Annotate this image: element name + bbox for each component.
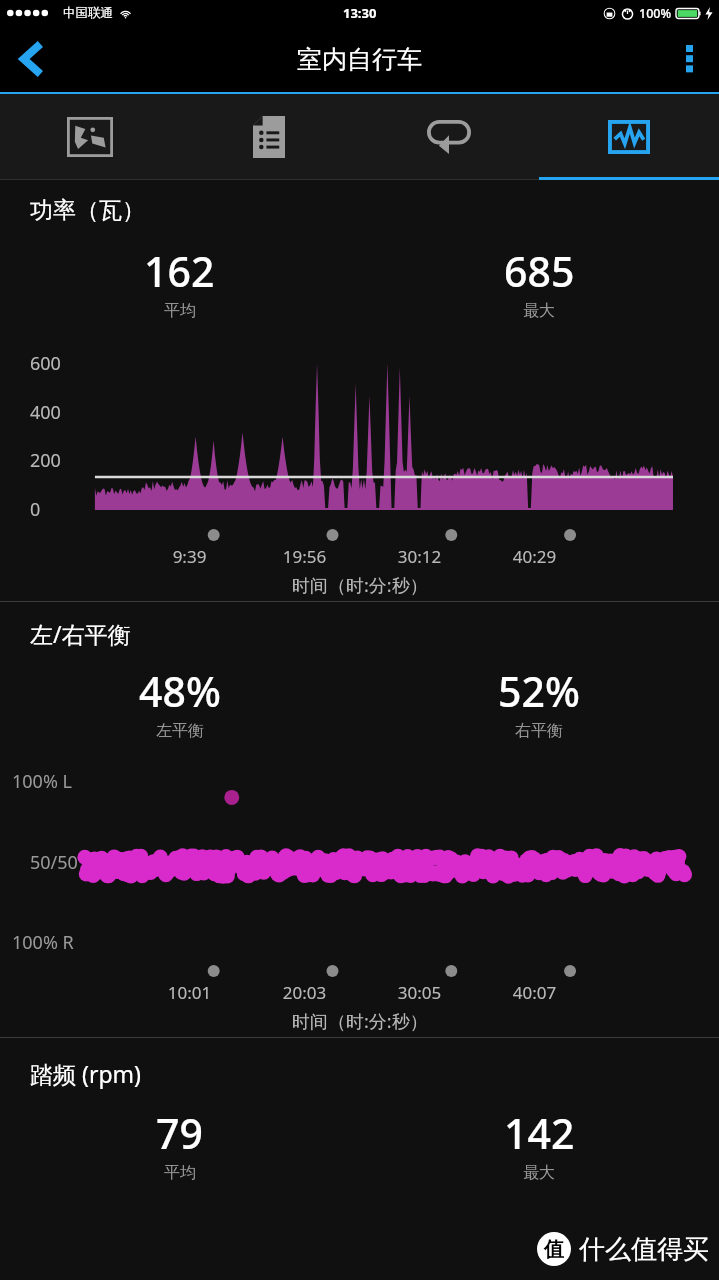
- staticText: 右平衡: [515, 721, 563, 741]
- staticText: 什么值得买: [579, 1233, 709, 1266]
- staticText: 142: [504, 1105, 575, 1161]
- staticText: 20:03: [247, 981, 362, 1004]
- staticText: 400: [30, 400, 61, 424]
- staticText: 0: [30, 497, 41, 521]
- staticText: 值: [544, 1237, 564, 1262]
- staticText: 48%: [139, 663, 221, 719]
- staticText: 平均: [164, 1163, 196, 1183]
- staticText: 40:07: [477, 981, 592, 1004]
- staticText: 40:29: [477, 545, 592, 568]
- staticText: 13:30: [343, 4, 377, 22]
- staticText: 200: [30, 448, 61, 472]
- staticText: 时间（时:分:秒）: [292, 1009, 428, 1033]
- staticText: 100%: [639, 5, 672, 22]
- staticText: 19:56: [247, 545, 362, 568]
- staticText: 9:39: [132, 545, 247, 568]
- staticText: 162: [144, 243, 215, 299]
- button[interactable]: 详情: [179, 94, 359, 180]
- button[interactable]: 返回: [0, 27, 64, 91]
- staticText: 左平衡: [156, 721, 204, 741]
- staticText: 左/右平衡: [30, 618, 131, 649]
- staticText: 最大: [523, 301, 555, 321]
- staticText: 685: [504, 243, 575, 299]
- staticText: 52%: [498, 663, 580, 719]
- button[interactable]: 更多选项: [659, 26, 719, 92]
- staticText: 中国联通: [63, 5, 113, 21]
- button[interactable]: 圈数: [359, 94, 539, 180]
- staticText: 100% L: [12, 769, 72, 794]
- staticText: 600: [30, 351, 61, 375]
- staticText: 50/50: [30, 850, 78, 875]
- staticText: 时间（时:分:秒）: [292, 573, 428, 597]
- staticText: 79: [156, 1105, 203, 1161]
- staticText: 踏频 (rpm): [30, 1058, 141, 1089]
- staticText: 100% R: [12, 930, 74, 955]
- staticText: 功率（瓦）: [30, 196, 145, 225]
- staticText: 30:12: [362, 545, 477, 568]
- staticText: 10:01: [132, 981, 247, 1004]
- staticText: 室内自行车: [297, 44, 422, 75]
- button[interactable]: 图表: [539, 94, 719, 180]
- staticText: 30:05: [362, 981, 477, 1004]
- staticText: 平均: [164, 301, 196, 321]
- staticText: 最大: [523, 1163, 555, 1183]
- button[interactable]: 路线图: [0, 94, 179, 180]
